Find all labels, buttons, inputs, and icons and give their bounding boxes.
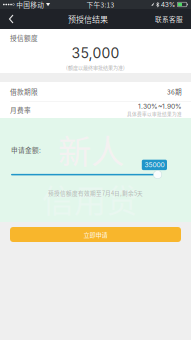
staticText: 中国移动 xyxy=(16,0,44,9)
staticText: 借款期限 xyxy=(10,87,38,96)
staticText: 35000 xyxy=(144,161,164,169)
staticText: 新人 xyxy=(58,125,124,173)
staticText: 具体费率以审批结果为准 xyxy=(127,110,182,117)
staticText: (额度以最终审批结果为准) xyxy=(66,64,125,71)
staticText: 授信额度 xyxy=(10,33,38,43)
staticText: 月费率 xyxy=(10,105,31,115)
button[interactable]: 联系客服 xyxy=(153,9,185,29)
staticText: 立即申请 xyxy=(83,230,107,239)
staticText: 联系客服 xyxy=(155,14,183,24)
staticText: 预授信结果 xyxy=(68,13,108,25)
staticText: 预授信额度有效期至7月4日,剩余5天 xyxy=(48,189,143,197)
staticText: 35,000 xyxy=(71,45,119,62)
staticText: 申请金额: xyxy=(11,145,41,155)
staticText: 36期 xyxy=(167,87,182,96)
staticText: 1.30%~1.90% xyxy=(138,102,182,110)
staticText: 信用贷 xyxy=(42,175,138,222)
staticText: 43% xyxy=(161,0,176,9)
button[interactable]: 返回 xyxy=(1,9,23,29)
staticText: 下午3:13 xyxy=(87,0,115,9)
button[interactable]: 立即申请 xyxy=(10,227,181,242)
